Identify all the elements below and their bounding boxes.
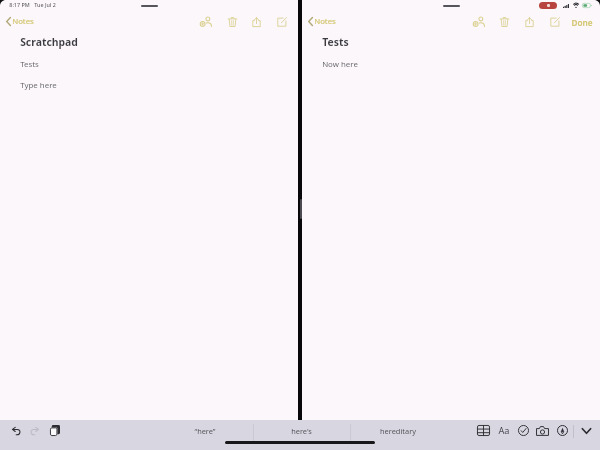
staticText: Tue Jul 2 [34, 1, 56, 8]
button[interactable]: Share [521, 13, 538, 30]
button[interactable]: Format [495, 422, 512, 439]
button[interactable]: Delete [496, 13, 513, 30]
staticText: “here” [194, 426, 216, 436]
button[interactable]: Notes [4, 14, 36, 29]
button[interactable]: Share [248, 13, 265, 30]
button[interactable]: Markup [554, 422, 571, 439]
button[interactable]: “here” [157, 420, 253, 441]
staticText: Tests [20, 59, 39, 70]
button[interactable]: Checklist [515, 422, 532, 439]
button[interactable]: Camera [534, 422, 551, 439]
staticText: Notes [12, 16, 34, 27]
button[interactable]: Paste [46, 422, 63, 439]
staticText: Tests [322, 35, 349, 49]
button[interactable]: Table [475, 422, 492, 439]
staticText: Scratchpad [20, 35, 78, 49]
button[interactable]: Delete [224, 13, 241, 30]
staticText: Type here [20, 80, 57, 91]
button[interactable]: Share note [198, 13, 215, 30]
button[interactable]: Done [569, 15, 595, 30]
button[interactable]: here's [253, 420, 350, 441]
button[interactable]: Share note [471, 13, 488, 30]
staticText: Notes [314, 16, 336, 27]
button[interactable]: hereditary [350, 420, 446, 441]
button[interactable]: Compose [273, 13, 290, 30]
button[interactable]: Notes [306, 14, 338, 29]
staticText: Done [571, 17, 593, 28]
staticText: here's [291, 426, 312, 436]
staticText: 8:17 PM [9, 1, 30, 8]
button[interactable]: Undo [8, 422, 25, 439]
staticText: hereditary [380, 426, 416, 436]
staticText: Now here [322, 59, 358, 70]
button[interactable]: Redo [26, 422, 43, 439]
button[interactable]: Hide keyboard [578, 422, 595, 439]
staticText: Aa [498, 424, 510, 437]
button[interactable]: Compose [546, 13, 563, 30]
